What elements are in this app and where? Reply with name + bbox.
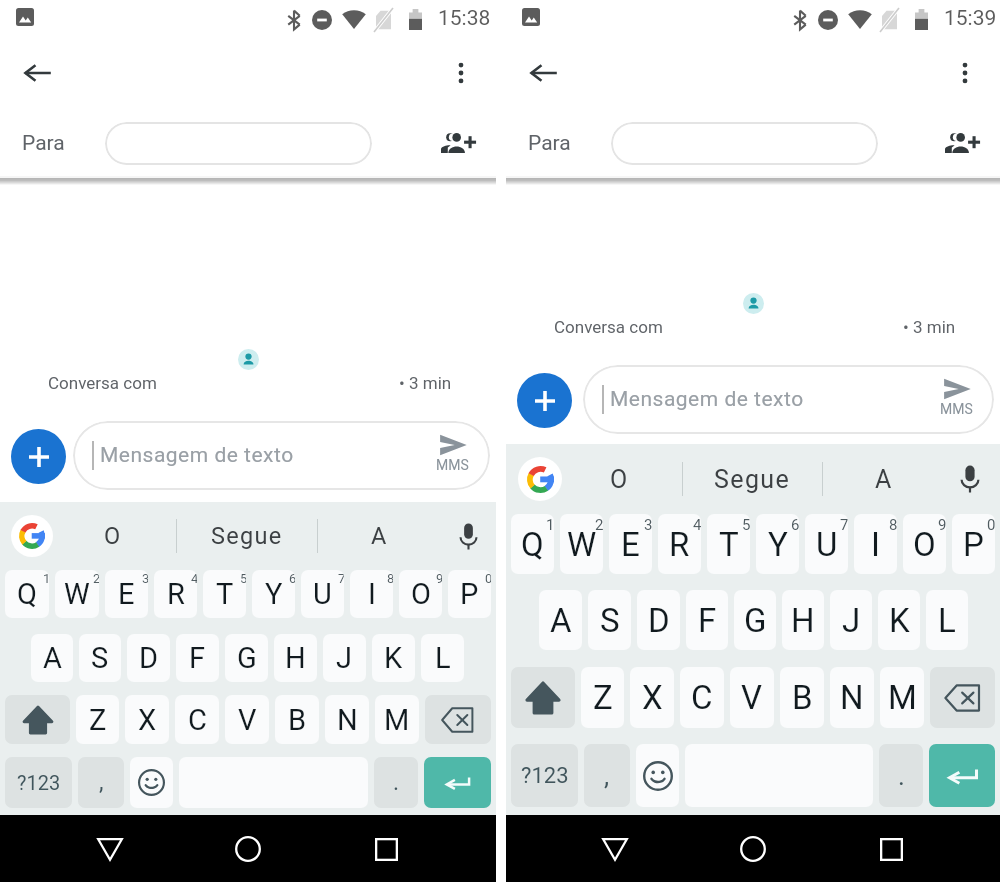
button[interactable]: Q [511, 514, 554, 574]
button[interactable]: Y [252, 570, 295, 618]
button[interactable]: Enter [424, 757, 491, 808]
button[interactable]: O [49, 502, 176, 570]
button[interactable]: W [560, 514, 603, 574]
button[interactable]: O [903, 514, 946, 574]
button[interactable]: F [176, 634, 219, 682]
button[interactable]: W [55, 570, 99, 618]
button[interactable]: Voice input [950, 459, 990, 499]
button[interactable]: K [878, 590, 920, 650]
button[interactable]: Back [520, 49, 568, 97]
button[interactable]: Home [727, 823, 779, 875]
button[interactable]: Add recipient [434, 119, 482, 167]
button[interactable]: Back [14, 49, 62, 97]
button[interactable]: U [301, 570, 344, 618]
button[interactable]: , [78, 757, 124, 808]
button[interactable]: D [127, 634, 170, 682]
button[interactable]: Z [581, 667, 624, 728]
button[interactable]: P [952, 514, 995, 574]
staticText: A [43, 641, 62, 675]
button[interactable]: Recipient field [611, 122, 878, 165]
button[interactable]: M [375, 695, 419, 744]
button[interactable]: E [105, 570, 148, 618]
button[interactable]: Back [84, 823, 136, 875]
button[interactable]: I [854, 514, 897, 574]
button[interactable]: K [372, 634, 415, 682]
button[interactable]: Google search [518, 457, 562, 501]
button[interactable]: L [421, 634, 464, 682]
button[interactable]: H [782, 590, 824, 650]
button[interactable]: Emoji [130, 757, 173, 808]
button[interactable]: . [374, 757, 418, 808]
button[interactable]: H [274, 634, 317, 682]
button[interactable]: , [584, 744, 630, 807]
button[interactable]: B [780, 667, 824, 728]
button[interactable]: V [225, 695, 269, 744]
button[interactable]: A [318, 502, 440, 570]
button[interactable]: Recent apps [360, 823, 412, 875]
button[interactable]: G [225, 634, 268, 682]
button[interactable]: E [609, 514, 652, 574]
staticText: Para [22, 131, 65, 156]
button[interactable]: F [686, 590, 728, 650]
button[interactable]: C [680, 667, 724, 728]
button[interactable]: More options [438, 50, 484, 96]
button[interactable]: P [448, 570, 491, 618]
button[interactable]: Text message input [73, 421, 490, 490]
staticText: X [642, 678, 663, 717]
button[interactable]: X [630, 667, 674, 728]
button[interactable]: Backspace [425, 695, 491, 744]
button[interactable]: O [556, 444, 682, 514]
button[interactable]: Add attachment [11, 429, 66, 484]
button[interactable]: Emoji [636, 744, 679, 807]
button[interactable]: X [125, 695, 169, 744]
button[interactable]: C [175, 695, 219, 744]
button[interactable]: Shift [511, 667, 575, 728]
button[interactable]: G [734, 590, 776, 650]
button[interactable]: O [399, 570, 442, 618]
button[interactable]: Google search [11, 515, 53, 557]
button[interactable]: Shift [5, 695, 70, 744]
button[interactable]: Segue [683, 444, 822, 514]
button[interactable]: A [31, 634, 73, 682]
button[interactable]: A [823, 444, 944, 514]
button[interactable]: Text message input [583, 365, 994, 434]
button[interactable]: J [830, 590, 872, 650]
button[interactable]: Recent apps [865, 823, 917, 875]
button[interactable]: R [658, 514, 701, 574]
button[interactable]: S [588, 590, 631, 650]
button[interactable]: T [203, 570, 246, 618]
button[interactable]: J [323, 634, 366, 682]
button[interactable]: Back [589, 823, 641, 875]
button[interactable]: M [880, 667, 924, 728]
button[interactable]: Recipient field [105, 122, 372, 165]
button[interactable]: Z [76, 695, 119, 744]
button[interactable]: I [350, 570, 393, 618]
button[interactable]: Y [756, 514, 799, 574]
button[interactable]: More options [942, 50, 988, 96]
button[interactable]: . [879, 744, 923, 807]
button[interactable]: Home [222, 823, 274, 875]
button[interactable]: Add recipient [938, 119, 986, 167]
button[interactable]: L [926, 590, 968, 650]
button[interactable]: A [539, 590, 582, 650]
button[interactable]: Enter [929, 744, 995, 807]
button[interactable]: Voice input [448, 516, 488, 556]
button[interactable]: N [830, 667, 874, 728]
button[interactable]: ?123 [5, 757, 72, 808]
button[interactable]: R [154, 570, 197, 618]
staticText: U [816, 525, 838, 564]
button[interactable]: V [730, 667, 774, 728]
button[interactable]: Segue [177, 502, 317, 570]
button[interactable]: Add attachment [517, 373, 572, 428]
button[interactable]: U [805, 514, 848, 574]
button[interactable]: T [707, 514, 750, 574]
button[interactable]: D [637, 590, 680, 650]
button[interactable]: B [275, 695, 319, 744]
button[interactable]: Q [5, 570, 49, 618]
button[interactable]: ?123 [511, 744, 578, 807]
button[interactable]: Backspace [930, 667, 995, 728]
button[interactable]: N [325, 695, 369, 744]
button[interactable]: S [79, 634, 121, 682]
